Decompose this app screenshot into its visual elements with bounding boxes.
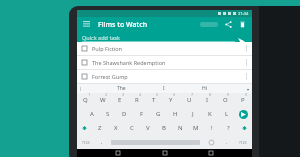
button[interactable]: More suggestions [244,85,252,93]
button[interactable]: Search [200,22,218,27]
staticText: 8 [209,93,211,97]
staticText: M [193,124,199,132]
button[interactable]: D [116,107,133,121]
button[interactable]: Send [235,36,248,46]
button[interactable]: F [133,107,150,121]
button[interactable]: , [95,135,109,149]
staticText: X [114,124,118,132]
staticText: K [208,110,212,118]
button[interactable]: J [184,107,201,121]
staticText: Quick add task [82,34,121,41]
staticText: The Shawshank Redemption [92,59,166,66]
button[interactable]: 8 [198,93,216,107]
staticText: ?123 [239,140,247,145]
button[interactable]: Enter [235,107,252,121]
staticText: H [173,110,178,118]
button[interactable]: Delete [237,19,248,30]
staticText: J [192,110,194,118]
staticText: 2 [105,93,107,97]
staticText: Hi [202,85,207,92]
button[interactable]: . [220,135,234,149]
staticText: ? [227,124,230,132]
button[interactable]: Z [92,121,108,135]
staticText: W [100,96,106,104]
staticText: D [122,110,127,118]
button[interactable]: Shift [77,121,92,135]
staticText: O [223,96,228,104]
button[interactable]: L [218,107,235,121]
staticText: B [162,124,166,132]
staticText: 3 [122,93,124,97]
button[interactable]: V [140,121,156,135]
button[interactable]: Emoji [202,135,220,149]
staticText: C [130,124,134,132]
staticText: Films to Watch [98,20,148,30]
staticText: R [135,96,139,104]
staticText: 6 [173,93,175,97]
staticText: U [187,96,192,104]
staticText: , [101,139,103,146]
button[interactable]: K [201,107,218,121]
staticText: G [156,110,161,118]
staticText: ▾ [247,87,250,92]
button[interactable]: N [172,121,188,135]
button[interactable]: Home [160,149,170,157]
button[interactable]: The Shawshank Redemption [77,56,252,69]
staticText: Y [169,96,173,104]
staticText: N [178,124,183,132]
button[interactable]: Recent apps [206,149,216,157]
staticText: ! [211,124,213,132]
staticText: 9 [227,93,229,97]
button[interactable]: Space [109,135,202,149]
staticText: The [117,85,126,92]
button[interactable]: 9 [216,93,234,107]
staticText: A [90,110,94,118]
button[interactable]: G [150,107,167,121]
staticText: Forrest Gump [92,73,128,80]
button[interactable]: M [188,121,204,135]
button[interactable]: 4 [128,93,145,107]
button[interactable]: Open navigation menu [81,19,92,30]
staticText: P [241,96,245,104]
button[interactable]: ? [220,121,236,135]
staticText: Z [98,124,102,132]
button[interactable]: ! [204,121,220,135]
staticText: I [163,85,165,92]
staticText: T [152,96,156,104]
staticText: . [226,139,228,146]
button[interactable]: 6 [162,93,180,107]
button[interactable]: ?123 [77,135,95,149]
button[interactable]: 7 [180,93,198,107]
button[interactable]: H [167,107,184,121]
button[interactable]: ?123 [234,135,252,149]
button[interactable]: Back [113,149,123,157]
staticText: F [140,110,144,118]
staticText: 4 [139,93,141,97]
staticText: E [118,96,122,104]
button[interactable]: X [108,121,124,135]
staticText: V [146,124,150,132]
button[interactable]: 3 [111,93,128,107]
button[interactable]: Pulp Fiction [77,42,252,55]
staticText: I [206,96,209,104]
button[interactable]: Share [223,19,234,30]
staticText: ?123 [82,140,90,145]
staticText: 21:34 [238,11,249,16]
staticText: Pulp Fiction [92,45,123,52]
staticText: 1 [88,93,90,97]
button[interactable]: B [156,121,172,135]
staticText: S [106,110,110,118]
staticText: 0 [245,93,247,97]
staticText: 7 [191,93,193,97]
staticText: 5 [156,93,158,97]
button[interactable]: 1 [77,93,94,107]
staticText: L [225,110,229,118]
button[interactable]: A [84,107,100,121]
button[interactable]: Forrest Gump [77,70,252,83]
button[interactable]: Shift [236,121,252,135]
button[interactable]: C [124,121,140,135]
button[interactable]: 0 [234,93,252,107]
button[interactable]: S [100,107,116,121]
button[interactable]: 5 [145,93,162,107]
button[interactable]: 2 [94,93,111,107]
